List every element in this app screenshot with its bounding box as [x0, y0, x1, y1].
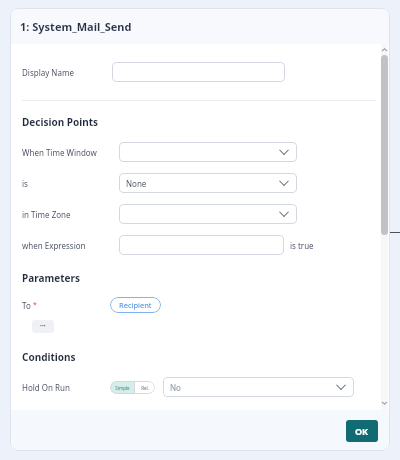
button[interactable]: No: [163, 377, 354, 397]
staticText: No: [170, 382, 181, 393]
button[interactable]: [112, 62, 285, 82]
staticText: Recipient: [119, 300, 152, 310]
staticText: when Expression: [22, 240, 86, 251]
button[interactable]: Simple: [110, 381, 134, 394]
button[interactable]: [119, 204, 297, 224]
button[interactable]: Recipient: [110, 297, 161, 313]
button[interactable]: [119, 142, 297, 162]
staticText: 1: System_Mail_Send: [20, 19, 132, 34]
staticText: Conditions: [22, 350, 76, 364]
staticText: Rel.: [141, 385, 149, 391]
staticText: Decision Points: [22, 115, 99, 129]
button[interactable]: More options: [32, 320, 54, 333]
staticText: •••: [40, 323, 46, 330]
staticText: *: [33, 300, 37, 310]
button[interactable]: Rel.: [135, 381, 155, 394]
button[interactable]: None: [119, 173, 297, 193]
staticText: Parameters: [22, 271, 80, 285]
staticText: None: [126, 178, 147, 189]
staticText: Hold On Run: [22, 382, 70, 393]
staticText: Display Name: [22, 67, 74, 78]
staticText: When Time Window: [22, 147, 97, 158]
staticText: is: [22, 178, 28, 189]
staticText: in Time Zone: [22, 209, 71, 220]
staticText: is true: [290, 240, 314, 251]
staticText: To: [22, 300, 31, 311]
staticText: Simple: [115, 385, 130, 391]
button[interactable]: [119, 235, 284, 255]
button[interactable]: OK: [346, 420, 378, 442]
staticText: OK: [355, 425, 369, 437]
